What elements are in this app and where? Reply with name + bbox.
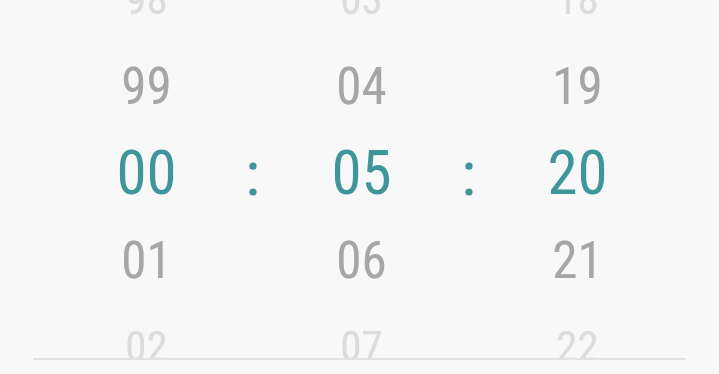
other: Seconds [477,0,677,358]
button[interactable]: 22 [477,290,677,358]
staticText: 21 [552,231,603,291]
button[interactable]: 03 [261,0,461,55]
button[interactable]: 00 [46,116,246,228]
staticText: 20 [547,137,608,208]
button[interactable]: 05 [261,116,461,228]
button[interactable]: 06 [261,205,461,317]
button[interactable]: 19 [477,31,677,143]
staticText: 18 [556,0,599,24]
other: Minutes [261,0,461,358]
button[interactable]: 18 [477,0,677,55]
button[interactable]: 07 [261,290,461,358]
staticText: 06 [336,231,387,291]
button[interactable]: 01 [46,205,246,317]
staticText: 03 [340,0,383,24]
staticText: 07 [340,321,383,358]
button[interactable]: 98 [46,0,246,55]
button[interactable]: 04 [261,31,461,143]
staticText: 22 [556,321,599,358]
staticText: 00 [116,137,177,208]
staticText: 98 [125,0,168,24]
staticText: 02 [125,321,168,358]
staticText: 19 [552,57,603,117]
button[interactable]: 99 [46,31,246,143]
staticText: 05 [331,137,392,208]
other: Hours [46,0,246,358]
staticText: 99 [121,57,172,117]
button[interactable]: 21 [477,205,677,317]
staticText: 04 [336,57,387,117]
staticText: 01 [121,231,172,291]
button[interactable]: 20 [477,116,677,228]
button[interactable]: 02 [46,290,246,358]
